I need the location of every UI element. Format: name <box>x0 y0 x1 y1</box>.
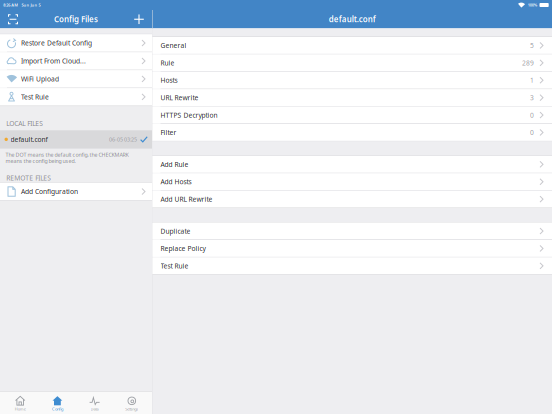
staticText: means the config being used. <box>6 157 76 164</box>
button[interactable]: Add URL Rewrite <box>152 191 552 208</box>
staticText: Sun Jun 5 <box>21 2 40 8</box>
button[interactable]: Home <box>3 392 37 414</box>
button[interactable]: URL Rewrite <box>152 89 552 106</box>
staticText: default.conf <box>10 135 47 144</box>
button[interactable]: Replace Policy <box>152 240 552 257</box>
button[interactable]: Import From Cloud... <box>0 52 152 70</box>
staticText: REMOTE FILES <box>6 173 51 182</box>
button[interactable]: default.conf <box>0 131 152 148</box>
button[interactable]: Data <box>78 392 112 414</box>
staticText: WiFi Upload <box>21 74 59 83</box>
staticText: URL Rewrite <box>160 93 198 102</box>
staticText: Restore Default Config <box>21 39 92 47</box>
button[interactable]: HTTPS Decryption <box>152 107 552 123</box>
staticText: Settings <box>125 406 138 412</box>
button[interactable]: Filter <box>152 124 552 141</box>
staticText: 100% <box>528 2 538 8</box>
staticText: Add Configuration <box>21 187 78 196</box>
staticText: HTTPS Decryption <box>160 111 217 119</box>
staticText: Duplicate <box>160 227 190 235</box>
staticText: Test Rule <box>160 261 188 270</box>
staticText: Filter <box>160 128 176 137</box>
staticText: Add Hosts <box>160 177 191 186</box>
staticText: 0 <box>530 128 534 137</box>
button[interactable]: Add Hosts <box>152 173 552 190</box>
staticText: 5 <box>530 41 534 50</box>
staticText: Rule <box>160 58 174 67</box>
button[interactable]: Settings <box>115 392 149 414</box>
staticText: Add URL Rewrite <box>160 195 212 204</box>
staticText: Config Files <box>54 14 98 24</box>
staticText: 289 <box>522 58 534 67</box>
button[interactable]: General <box>152 37 552 54</box>
button[interactable]: Test Rule <box>152 257 552 274</box>
staticText: 3 <box>530 93 534 102</box>
button[interactable]: Test Rule <box>0 88 152 106</box>
staticText: Test Rule <box>21 92 49 101</box>
staticText: LOCAL FILES <box>6 119 43 128</box>
button[interactable]: Add Config File <box>130 10 152 28</box>
staticText: The DOT means the default config, the CH… <box>6 151 129 158</box>
staticText: 1 <box>530 76 534 85</box>
staticText: 8:26 AM <box>3 2 18 8</box>
button[interactable]: Restore Default Config <box>0 34 152 52</box>
button[interactable]: Add Configuration <box>0 183 152 200</box>
staticText: Hosts <box>160 76 177 85</box>
staticText: Data <box>91 406 99 412</box>
staticText: Import From Cloud... <box>21 56 86 65</box>
staticText: General <box>160 41 186 50</box>
staticText: Home <box>15 406 26 412</box>
staticText: 0 <box>530 111 534 119</box>
button[interactable]: Toggle Sidebar <box>0 10 22 28</box>
staticText: default.conf <box>329 14 376 24</box>
button[interactable]: Add Rule <box>152 156 552 173</box>
staticText: 06-05 03:25 <box>109 136 137 143</box>
button[interactable]: Config <box>40 392 74 414</box>
staticText: Add Rule <box>160 160 188 169</box>
staticText: Replace Policy <box>160 244 205 253</box>
button[interactable]: Hosts <box>152 72 552 89</box>
button[interactable]: WiFi Upload <box>0 70 152 88</box>
button[interactable]: Duplicate <box>152 223 552 239</box>
staticText: Config <box>52 406 63 412</box>
button[interactable]: Rule <box>152 54 552 71</box>
